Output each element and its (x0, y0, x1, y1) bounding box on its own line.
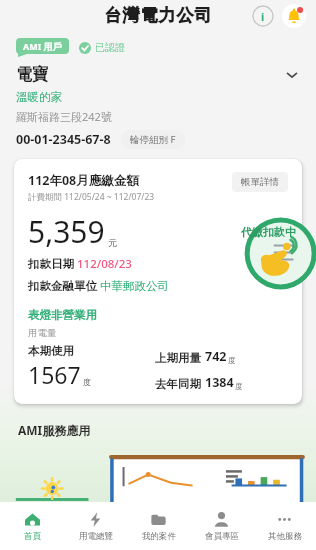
button[interactable]: 首頁 (0, 502, 64, 550)
staticText: 溫暖的家 (16, 90, 62, 104)
staticText: 中華郵政公司 (100, 279, 169, 293)
button[interactable]: Notifications (282, 4, 306, 28)
staticText: 其他服務 (268, 531, 302, 542)
staticText: 電寶 (16, 65, 48, 85)
staticText: 台灣電力公司 (104, 5, 212, 26)
staticText: 帳單詳情 (241, 176, 279, 188)
staticText: 代繳扣款中 (241, 225, 296, 239)
button[interactable]: 其他服務 (253, 502, 316, 550)
staticText: 1384 (205, 374, 234, 391)
staticText: 元 (108, 237, 117, 248)
staticText: 去年同期 (155, 377, 201, 391)
staticText: 00-01-2345-67-8 (16, 131, 111, 148)
button[interactable]: 用電總覽 (64, 502, 127, 550)
staticText: 扣款日期 (28, 256, 77, 272)
staticText: AMI 用戶 (23, 40, 62, 52)
staticText: 表燈非營業用 (28, 308, 97, 322)
staticText: 度 (83, 377, 91, 387)
button[interactable]: 電寶 (16, 65, 300, 85)
button[interactable]: 112年08月應繳金額 (14, 159, 302, 404)
staticText: i (261, 9, 265, 24)
staticText: 度 (228, 356, 236, 365)
button[interactable]: 我的案件 (127, 502, 190, 550)
staticText: 用電量 (28, 327, 57, 339)
staticText: 已認證 (95, 41, 125, 54)
staticText: 首頁 (24, 531, 41, 542)
staticText: 度 (235, 382, 243, 391)
button[interactable]: 會員專區 (190, 502, 253, 550)
button[interactable]: Information (252, 5, 274, 27)
staticText: 用電總覽 (79, 531, 113, 542)
staticText: 會員專區 (205, 531, 239, 542)
button[interactable]: 帳單詳情 (232, 172, 288, 192)
staticText: 742 (205, 348, 227, 365)
staticText: 1567 (28, 359, 81, 390)
staticText: 上期用量 (155, 351, 201, 365)
button[interactable]: AMI 用戶 (16, 38, 69, 57)
staticText: 我的案件 (142, 531, 176, 542)
staticText: 112/08/23 (77, 256, 132, 272)
staticText: AMI服務應用 (18, 422, 91, 438)
button[interactable]: 輪停組別 F (121, 130, 185, 149)
staticText: 羅斯福路三段242號 (16, 109, 112, 124)
staticText: 5,359 (28, 211, 105, 252)
staticText: 112年08月應繳金額 (28, 172, 139, 189)
staticText: 計費期間 112/05/24 ~ 112/07/23 (28, 191, 155, 203)
staticText: 本期使用 (28, 344, 74, 358)
staticText: 輪停組別 F (130, 133, 176, 146)
staticText: 扣款金融單位 (28, 278, 100, 294)
